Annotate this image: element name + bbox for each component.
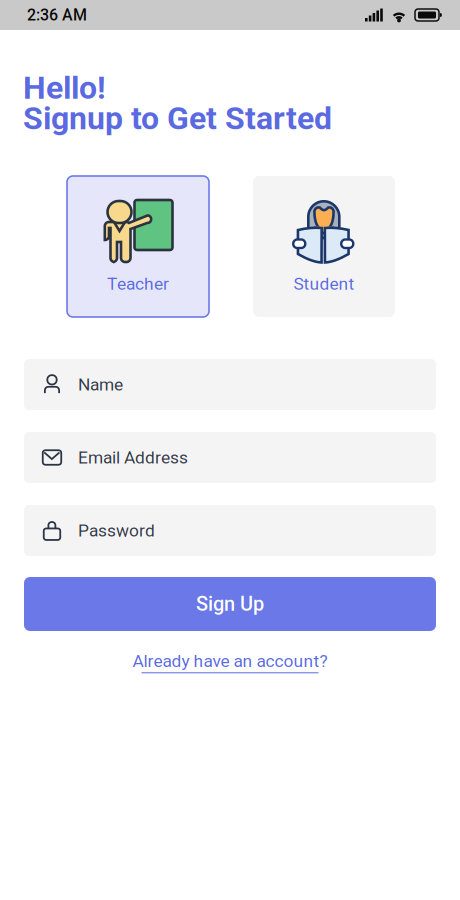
- button[interactable]: Email Address: [24, 432, 436, 483]
- button[interactable]: Student: [253, 176, 395, 317]
- button[interactable]: Password: [24, 505, 436, 556]
- staticText: Hello!: [23, 69, 106, 106]
- staticText: Student: [293, 274, 354, 294]
- staticText: Name: [78, 374, 123, 395]
- staticText: Already have an account?: [132, 651, 327, 671]
- staticText: 2:36 AM: [27, 6, 87, 24]
- button[interactable]: Name: [24, 359, 436, 410]
- button[interactable]: Already have an account?: [0, 651, 460, 673]
- button[interactable]: Teacher: [67, 176, 209, 317]
- staticText: Email Address: [78, 447, 188, 468]
- staticText: Signup to Get Started: [23, 99, 332, 137]
- staticText: Teacher: [107, 274, 169, 294]
- button[interactable]: Sign Up: [24, 577, 436, 631]
- staticText: Password: [78, 520, 155, 541]
- staticText: Sign Up: [196, 592, 264, 616]
